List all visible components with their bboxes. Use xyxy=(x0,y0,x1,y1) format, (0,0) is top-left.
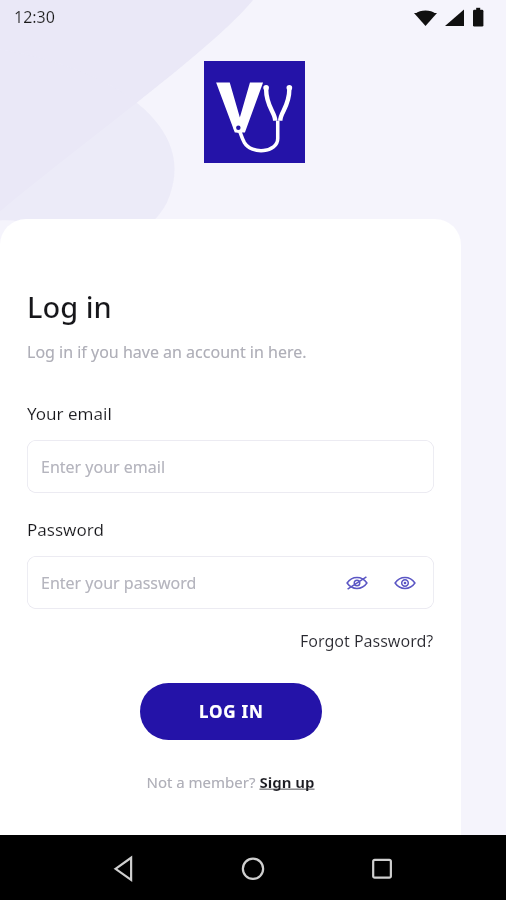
staticText: Enter your password xyxy=(41,572,197,594)
staticText: 12:30 xyxy=(14,6,55,28)
button[interactable]: Enter your email xyxy=(27,440,434,493)
staticText: Log in if you have an account in here. xyxy=(27,341,307,363)
button[interactable]: Hide password xyxy=(342,568,372,598)
staticText: Not a member? Sign up xyxy=(146,772,315,792)
staticText: Enter your email xyxy=(41,456,166,478)
staticText: Password xyxy=(27,518,104,541)
staticText: Log in xyxy=(27,287,112,326)
button[interactable]: Not a member? Sign up xyxy=(140,769,321,795)
button[interactable]: Enter your password xyxy=(27,556,434,609)
staticText: LOG IN xyxy=(199,700,264,723)
button[interactable]: Show password xyxy=(390,568,420,598)
button[interactable]: LOG IN xyxy=(140,683,322,740)
staticText: Forgot Password? xyxy=(300,630,434,652)
button[interactable]: Forgot Password? xyxy=(300,628,461,654)
staticText: Your email xyxy=(27,402,112,425)
